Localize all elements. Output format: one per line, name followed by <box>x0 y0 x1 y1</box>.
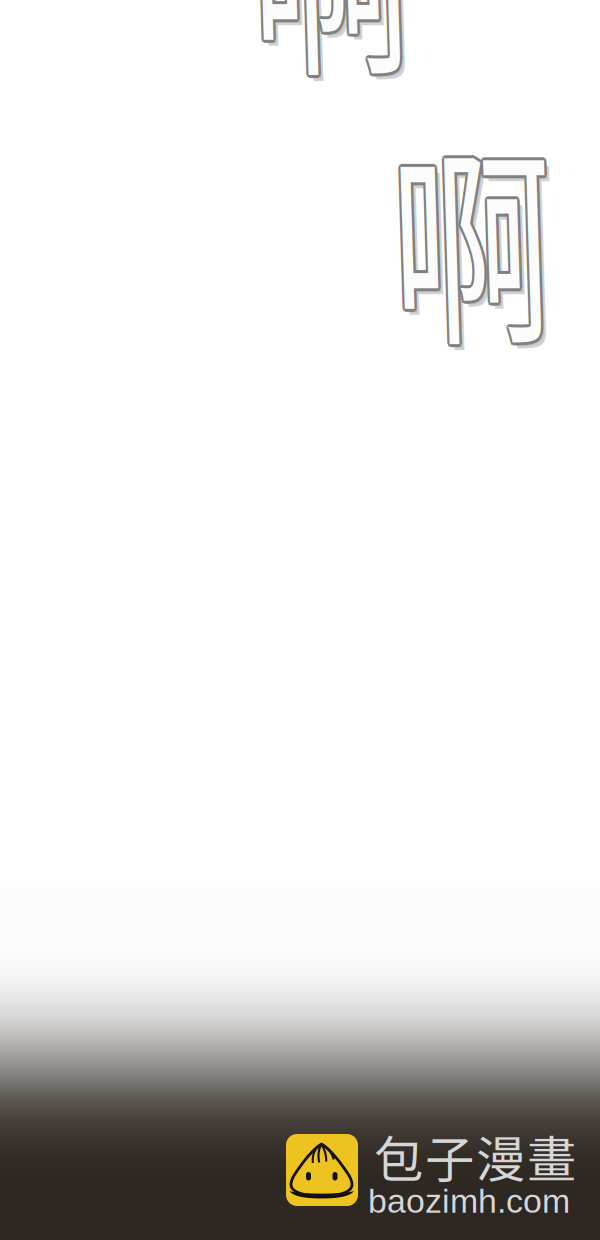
staticText: 啊 <box>392 89 600 394</box>
staticText: 啊 <box>243 0 454 121</box>
staticText: 啊 <box>383 83 594 388</box>
staticText: 包子漫畫 <box>374 1120 576 1191</box>
staticText: 啊 <box>243 0 454 117</box>
staticText: 啊 <box>245 0 456 119</box>
staticText: 啊 <box>245 0 456 122</box>
staticText: 啊 <box>389 86 600 391</box>
button[interactable]: 包子漫畫 <box>286 1130 578 1214</box>
staticText: 啊 <box>248 0 459 122</box>
staticText: 啊 <box>386 83 597 388</box>
staticText: 啊 <box>389 83 600 388</box>
staticText: 啊 <box>386 80 597 385</box>
staticText: 啊 <box>384 81 595 386</box>
staticText: baozimh.com <box>368 1182 570 1220</box>
staticText: 啊 <box>251 0 462 125</box>
staticText: 啊 <box>247 0 458 117</box>
staticText: 啊 <box>388 81 599 386</box>
staticText: 啊 <box>386 86 597 391</box>
staticText: 啊 <box>242 0 453 119</box>
staticText: 啊 <box>247 0 458 121</box>
staticText: 啊 <box>384 85 595 390</box>
staticText: 啊 <box>388 85 599 390</box>
staticText: 啊 <box>248 0 459 119</box>
staticText: 啊 <box>245 0 456 116</box>
